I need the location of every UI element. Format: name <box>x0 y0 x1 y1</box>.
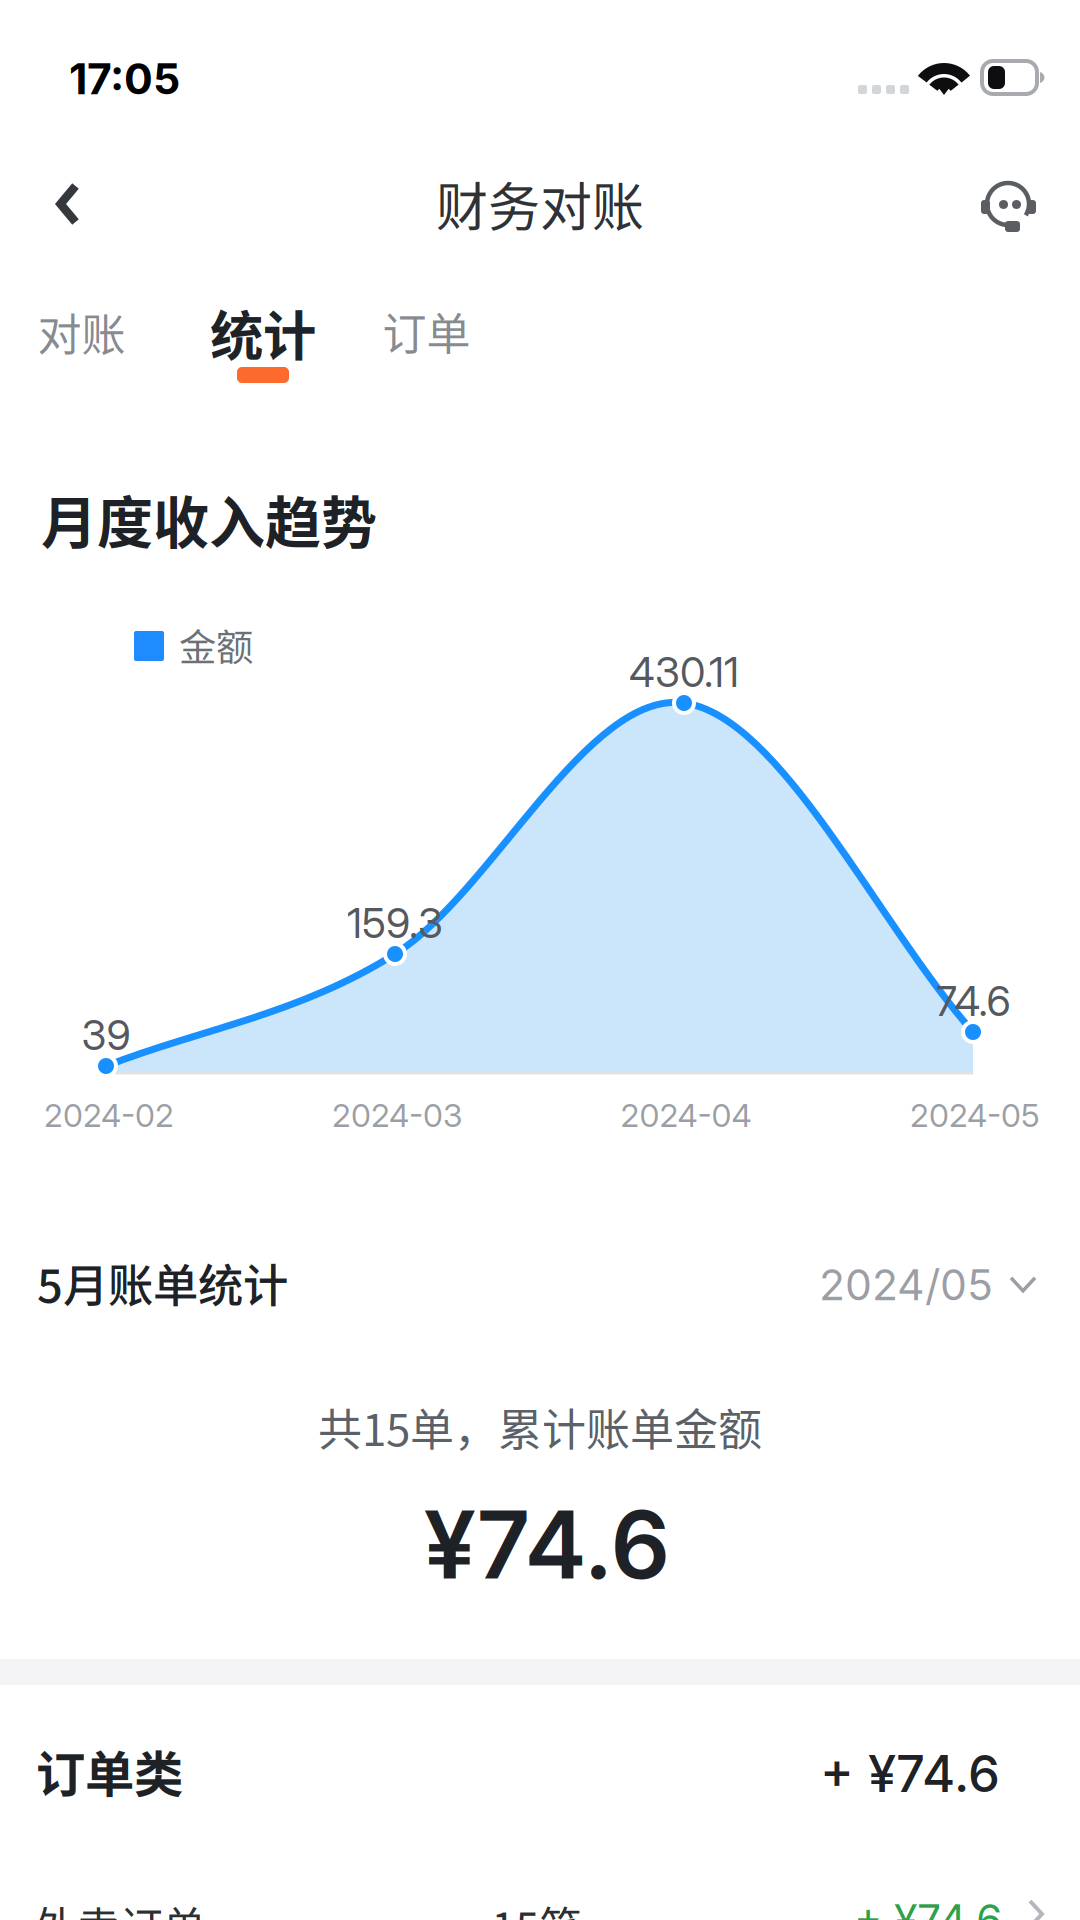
staticText: ¥74.6 <box>423 1488 670 1601</box>
staticText: 月度收入趋势 <box>41 478 377 559</box>
staticText: 金额 <box>179 618 253 672</box>
staticText: 对账 <box>37 300 125 364</box>
button[interactable]: 订单 <box>345 273 508 389</box>
staticText: 74.6 <box>935 976 1010 1026</box>
staticText: 430.11 <box>629 647 739 697</box>
staticText: 统计 <box>210 294 316 371</box>
staticText: 财务对账 <box>436 166 644 241</box>
button[interactable]: 返回 <box>19 154 119 254</box>
button[interactable]: 客服 <box>959 157 1059 257</box>
staticText: 2024/05 <box>819 1259 993 1311</box>
staticText: 共15单，累计账单金额 <box>318 1395 762 1459</box>
staticText: 2024-02 <box>44 1096 174 1135</box>
staticText: 39 <box>81 1010 130 1060</box>
staticText: 159.3 <box>347 898 443 948</box>
button[interactable]: 2024/05 <box>797 1241 1059 1329</box>
button[interactable]: 外卖订单 <box>0 1874 1080 1920</box>
staticText: 2024-04 <box>620 1096 751 1135</box>
staticText: 外卖订单 <box>34 1894 206 1920</box>
staticText: 2024-05 <box>910 1096 1040 1135</box>
staticText: + ¥74.6 <box>820 1743 1000 1804</box>
button[interactable]: 统计 <box>183 270 343 394</box>
staticText: 5月账单统计 <box>37 1250 288 1316</box>
staticText: 17:05 <box>69 53 180 105</box>
staticText: 15笔 <box>491 1894 582 1920</box>
staticText: 订单类 <box>36 1735 183 1806</box>
staticText: + ¥74.6 <box>854 1894 1002 1920</box>
staticText: 订单 <box>382 299 470 363</box>
staticText: 2024-03 <box>332 1096 462 1135</box>
button[interactable]: 对账 <box>0 274 163 390</box>
